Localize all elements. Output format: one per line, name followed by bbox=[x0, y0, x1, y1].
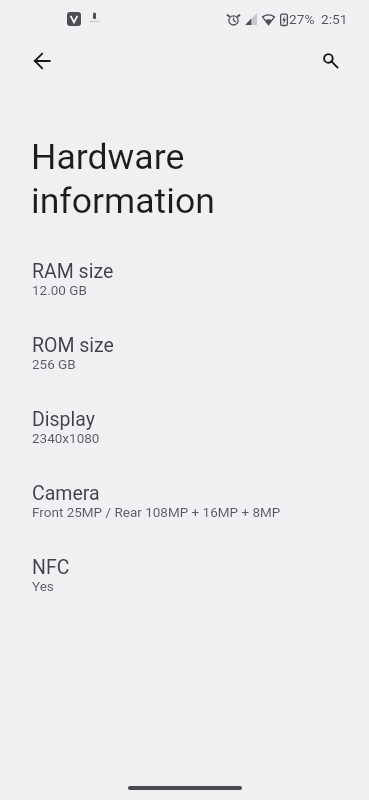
button[interactable]: Display bbox=[0, 400, 369, 474]
staticText: Yes bbox=[32, 578, 54, 594]
staticText: 2340x1080 bbox=[32, 430, 100, 446]
staticText: Display bbox=[32, 408, 95, 431]
staticText: 2:51 bbox=[321, 11, 348, 27]
button[interactable]: RAM size bbox=[0, 252, 369, 326]
staticText: ROM size bbox=[32, 334, 114, 357]
button[interactable]: ROM size bbox=[0, 326, 369, 400]
staticText: RAM size bbox=[32, 260, 114, 283]
button[interactable]: NFC bbox=[0, 548, 369, 622]
button[interactable]: Back bbox=[22, 41, 61, 80]
button[interactable]: Camera bbox=[0, 474, 369, 548]
staticText: 27% bbox=[289, 11, 315, 27]
staticText: 12.00 GB bbox=[32, 282, 87, 298]
staticText: Camera bbox=[32, 482, 100, 505]
button[interactable]: Search bbox=[311, 41, 350, 80]
staticText: NFC bbox=[32, 556, 70, 579]
staticText: Hardware information bbox=[31, 136, 341, 222]
staticText: 256 GB bbox=[32, 356, 76, 372]
staticText: Front 25MP / Rear 108MP + 16MP + 8MP bbox=[32, 504, 281, 520]
